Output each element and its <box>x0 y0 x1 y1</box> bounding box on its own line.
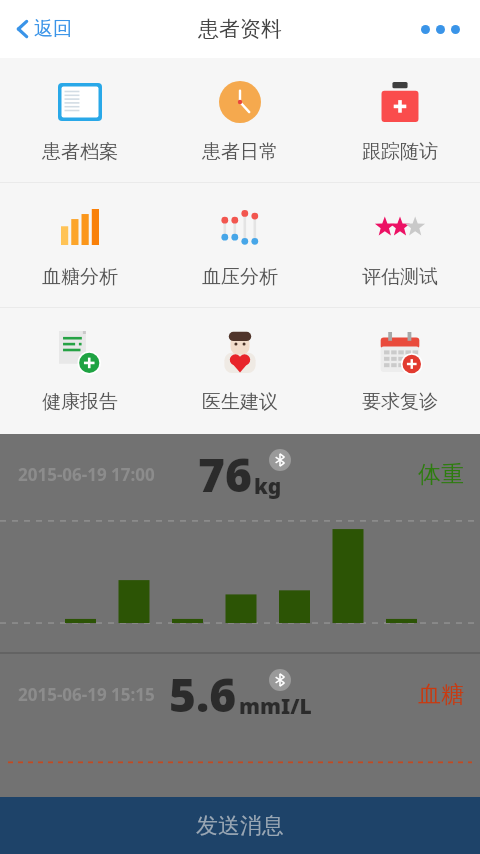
button[interactable]: 2015-06-19 17:00 <box>0 434 480 652</box>
button[interactable]: 2015-06-19 15:15 <box>0 652 480 797</box>
button[interactable]: 患者档案 <box>0 58 160 182</box>
staticText: 返回 <box>34 17 72 41</box>
staticText: 体重 <box>418 460 464 489</box>
button[interactable]: 患者日常 <box>160 58 320 182</box>
staticText: 跟踪随访 <box>362 140 438 164</box>
staticText: 患者档案 <box>42 140 118 164</box>
staticText: 76 <box>198 443 252 506</box>
button[interactable]: 血糖分析 <box>0 183 160 307</box>
button[interactable]: 医生建议 <box>160 308 320 432</box>
staticText: 健康报告 <box>42 390 118 414</box>
staticText: 血压分析 <box>202 265 278 289</box>
staticText: 发送消息 <box>196 812 284 840</box>
staticText: 患者资料 <box>198 16 282 42</box>
staticText: 要求复诊 <box>362 390 438 414</box>
staticText: 患者日常 <box>202 140 278 164</box>
staticText: 血糖分析 <box>42 265 118 289</box>
staticText: mmI/L <box>239 692 312 721</box>
staticText: 评估测试 <box>362 265 438 289</box>
button[interactable]: 评估测试 <box>320 183 480 307</box>
button[interactable]: 要求复诊 <box>320 308 480 432</box>
staticText: 血糖 <box>418 680 464 709</box>
staticText: 2015-06-19 15:15 <box>18 683 155 706</box>
button[interactable]: 发送消息 <box>0 797 480 854</box>
staticText: 医生建议 <box>202 390 278 414</box>
button[interactable]: 返回 <box>10 11 78 47</box>
button[interactable]: 跟踪随访 <box>320 58 480 182</box>
staticText: 5.6 <box>169 663 237 726</box>
button[interactable]: 健康报告 <box>0 308 160 432</box>
staticText: 2015-06-19 17:00 <box>18 463 155 486</box>
button[interactable]: 血压分析 <box>160 183 320 307</box>
button[interactable]: More options <box>415 19 466 40</box>
staticText: kg <box>254 472 282 501</box>
